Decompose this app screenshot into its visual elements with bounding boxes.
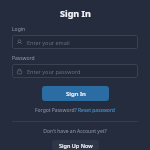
staticText: Enter your email xyxy=(27,39,70,46)
button[interactable]: Enter your email xyxy=(12,35,138,49)
button[interactable]: Sign Up Now xyxy=(52,140,99,150)
button[interactable]: Reset password xyxy=(78,107,115,114)
staticText: Sign In xyxy=(60,7,91,19)
staticText: Sign Up Now xyxy=(59,142,93,149)
staticText: Reset password xyxy=(78,107,115,114)
staticText: Password xyxy=(12,55,35,62)
staticText: Forgot Password? xyxy=(35,107,78,114)
staticText: Login xyxy=(12,26,26,33)
staticText: Don't have an Account yet? xyxy=(43,128,107,135)
staticText: Sign In xyxy=(66,90,86,98)
button[interactable]: Sign In xyxy=(42,86,109,101)
button[interactable]: Enter your password xyxy=(12,64,138,78)
staticText: Enter your password xyxy=(27,68,81,75)
